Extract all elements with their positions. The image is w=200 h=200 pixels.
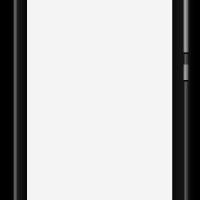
button[interactable]: Power <box>182 0 190 52</box>
button[interactable]: Volume <box>182 64 190 80</box>
